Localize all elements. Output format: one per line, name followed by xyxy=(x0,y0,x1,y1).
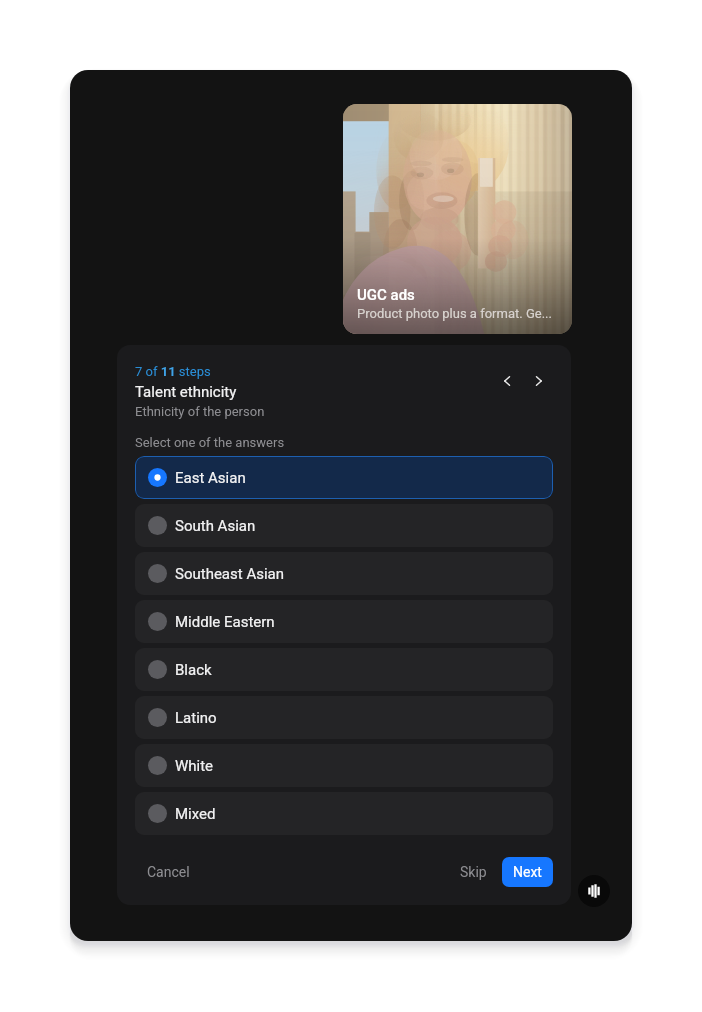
button[interactable]: Latino xyxy=(135,696,553,739)
staticText: White xyxy=(175,757,214,775)
button[interactable]: Middle Eastern xyxy=(135,600,553,643)
staticText: Mixed xyxy=(175,805,216,823)
button[interactable]: Mixed xyxy=(135,792,553,835)
staticText: East Asian xyxy=(175,469,246,487)
button[interactable]: Southeast Asian xyxy=(135,552,553,595)
staticText: UGC ads xyxy=(357,286,415,304)
staticText: Black xyxy=(175,661,212,679)
staticText: Next xyxy=(513,864,542,880)
staticText: Product photo plus a format. Ge... xyxy=(357,306,552,321)
staticText: Ethnicity of the person xyxy=(135,404,265,419)
staticText: South Asian xyxy=(175,517,256,535)
staticText: Cancel xyxy=(147,864,190,880)
button[interactable]: Previous step xyxy=(495,369,519,393)
button[interactable]: Next xyxy=(502,857,553,887)
button[interactable]: South Asian xyxy=(135,504,553,547)
button[interactable]: East Asian xyxy=(135,456,553,499)
button[interactable]: White xyxy=(135,744,553,787)
staticText: 7 of 11 steps xyxy=(135,364,211,379)
staticText: Southeast Asian xyxy=(175,565,284,583)
button[interactable]: Black xyxy=(135,648,553,691)
staticText: Select one of the answers xyxy=(135,435,285,450)
staticText: Talent ethnicity xyxy=(135,383,237,401)
button[interactable]: Skip xyxy=(450,856,497,888)
staticText: Skip xyxy=(460,864,487,880)
button[interactable]: Audio assistant xyxy=(578,875,610,907)
staticText: Middle Eastern xyxy=(175,613,275,631)
button[interactable]: Next step xyxy=(527,369,551,393)
button[interactable]: UGC ads preview xyxy=(343,104,572,334)
staticText: Latino xyxy=(175,709,217,727)
button[interactable]: Cancel xyxy=(135,856,202,888)
